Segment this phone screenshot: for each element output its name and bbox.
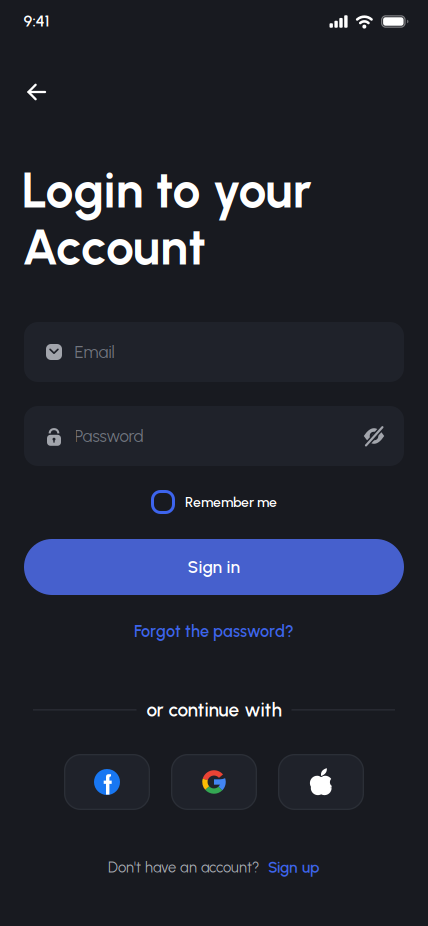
- staticText: Email: [74, 342, 114, 362]
- button[interactable]: Sign in: [24, 539, 404, 595]
- staticText: Login to your: [21, 160, 311, 220]
- button[interactable]: Sign in with Google: [171, 754, 257, 810]
- button[interactable]: Remember me: [151, 490, 277, 514]
- staticText: Don't have an account?: [108, 858, 259, 876]
- staticText: or continue with: [146, 698, 281, 721]
- staticText: 9:41: [23, 11, 49, 30]
- button[interactable]: Forgot the password?: [134, 621, 294, 641]
- staticText: Account: [22, 217, 206, 277]
- staticText: Sign up: [268, 858, 320, 877]
- staticText: Sign in: [187, 557, 240, 577]
- staticText: Password: [74, 426, 143, 446]
- staticText: Forgot the password?: [134, 621, 294, 641]
- staticText: Remember me: [185, 494, 277, 510]
- button[interactable]: Show password: [362, 424, 386, 448]
- textField[interactable]: Password: [24, 406, 404, 466]
- textField[interactable]: Email: [24, 322, 404, 382]
- button[interactable]: Back: [27, 83, 46, 101]
- button[interactable]: Sign in with Facebook: [64, 754, 150, 810]
- button[interactable]: Sign in with Apple: [278, 754, 364, 810]
- button[interactable]: Sign up: [268, 858, 320, 877]
